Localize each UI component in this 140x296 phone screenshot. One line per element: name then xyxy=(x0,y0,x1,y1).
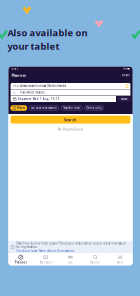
staticText: Planner xyxy=(15,261,27,264)
staticText: Check our Learn More About Reservations xyxy=(16,249,74,253)
staticText: Paris Nord (France) xyxy=(20,91,45,94)
staticText: Filters xyxy=(17,106,25,110)
button[interactable]: Planner xyxy=(8,255,33,264)
staticText: Departure Wed 1 Aug, 10:15 xyxy=(18,97,60,101)
staticText: No Results Found xyxy=(58,128,83,131)
button[interactable]: More xyxy=(108,255,133,264)
button[interactable]: Direct only xyxy=(84,105,104,111)
button[interactable]: Transfer time xyxy=(61,105,82,111)
button[interactable]: Departure Wed 1 Aug, 10:15 xyxy=(11,96,116,102)
staticText: My tickets xyxy=(40,261,52,264)
staticText: More xyxy=(117,261,124,264)
button[interactable]: Reset xyxy=(122,73,130,77)
staticText: Direct only xyxy=(86,106,101,110)
staticText: From xyxy=(13,84,19,88)
staticText: Travelling during high season? Book your… xyxy=(16,242,126,249)
button[interactable]: My tickets xyxy=(33,255,58,264)
staticText: Live xyxy=(68,261,73,264)
button[interactable]: Explore xyxy=(83,255,108,264)
button[interactable]: No seat reservation xyxy=(29,105,59,111)
staticText: Amsterdam Centraal (Netherlands) xyxy=(20,84,66,88)
button[interactable]: From xyxy=(11,83,130,89)
staticText: Reset xyxy=(122,73,130,77)
staticText: i xyxy=(12,245,13,249)
button[interactable]: Live xyxy=(58,255,83,264)
button[interactable]: To xyxy=(11,89,130,95)
button[interactable]: Filters xyxy=(11,105,27,111)
staticText: Explore xyxy=(90,261,100,264)
staticText: Now xyxy=(121,97,127,101)
staticText: Transfer time xyxy=(63,106,80,110)
staticText: Search xyxy=(64,117,77,122)
button[interactable]: Now xyxy=(117,96,130,102)
staticText: 9:41 xyxy=(11,67,18,70)
staticText: Planner xyxy=(11,72,26,78)
button[interactable]: Search xyxy=(11,116,130,124)
staticText: No seat reservation xyxy=(31,106,57,110)
staticText: Also available on xyxy=(7,27,87,39)
staticText: To xyxy=(13,91,16,94)
staticText: your tablet xyxy=(7,40,59,52)
